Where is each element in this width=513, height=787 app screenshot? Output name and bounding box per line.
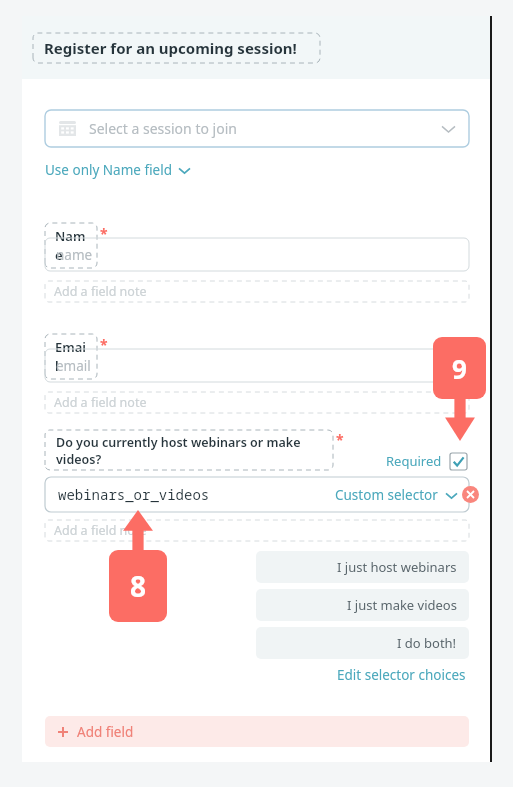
staticText: Add field [77, 723, 134, 741]
staticText: Use only Name field [45, 161, 172, 179]
staticText: Required [386, 452, 442, 470]
staticText: name [56, 246, 93, 264]
staticText: Register for an upcoming session! [44, 38, 297, 58]
staticText: Select a session to join [89, 119, 237, 138]
button[interactable]: I just make videos [256, 589, 469, 621]
staticText: Add a field note [54, 283, 147, 300]
staticText: * [336, 430, 344, 449]
staticText: Name [55, 227, 87, 264]
button[interactable]: I do both! [256, 627, 469, 659]
button[interactable]: Custom selector [335, 486, 457, 504]
button[interactable]: Edit selector choices [337, 666, 466, 684]
staticText: I just make videos [347, 596, 457, 614]
staticText: * [100, 224, 108, 243]
button[interactable]: Add field [45, 716, 469, 747]
staticText: email [56, 357, 91, 375]
staticText: Do you currently host webinars or make v… [56, 434, 333, 467]
staticText: I just host webinars [337, 558, 457, 576]
button[interactable]: Required [386, 452, 467, 470]
staticText: Add a field note [54, 394, 147, 411]
staticText: 9 [452, 351, 467, 386]
staticText: 8 [130, 567, 147, 605]
staticText: Edit selector choices [337, 666, 466, 684]
button[interactable]: Remove field [462, 486, 479, 503]
button[interactable]: Select a session to join [45, 110, 469, 147]
staticText: * [100, 335, 108, 354]
staticText: Custom selector [335, 486, 438, 504]
button[interactable]: I just host webinars [256, 551, 469, 583]
staticText: Add a field note [54, 522, 147, 539]
button[interactable]: Use only Name field [45, 161, 190, 179]
staticText: webinars_or_videos [58, 485, 210, 504]
staticText: I do both! [397, 634, 457, 652]
staticText: Email [55, 338, 87, 375]
